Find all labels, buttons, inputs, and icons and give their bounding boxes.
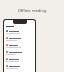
button[interactable]: [4, 36, 35, 43]
button[interactable]: [4, 64, 35, 71]
staticText: Offline reading: [0, 8, 64, 13]
button[interactable]: [4, 43, 35, 50]
button[interactable]: [4, 29, 35, 36]
button[interactable]: [4, 57, 35, 64]
button[interactable]: [4, 50, 35, 57]
